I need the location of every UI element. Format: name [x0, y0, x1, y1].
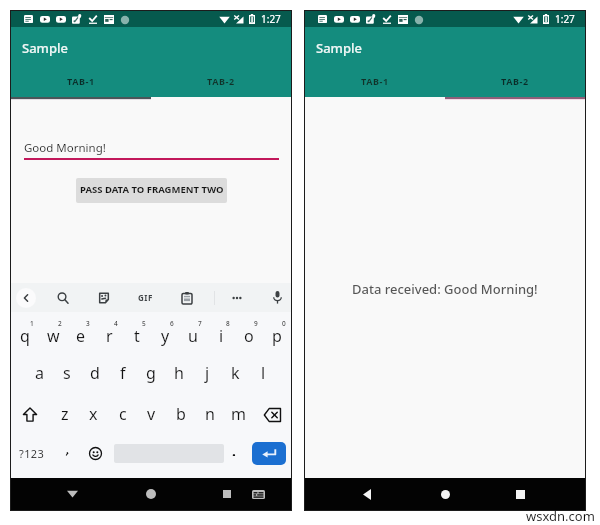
- button[interactable]: x: [79, 394, 108, 435]
- button[interactable]: TAB-1: [11, 66, 151, 97]
- staticText: n: [205, 403, 215, 425]
- button[interactable]: More options: [229, 290, 245, 306]
- staticText: Data received: Good Morning!: [352, 280, 538, 298]
- button[interactable]: Collapse toolbar: [16, 288, 36, 308]
- staticText: i: [219, 325, 224, 347]
- button[interactable]: v: [137, 394, 166, 435]
- button[interactable]: f: [109, 353, 137, 394]
- button[interactable]: d: [81, 353, 109, 394]
- staticText: 7: [198, 319, 202, 328]
- button[interactable]: Shift: [11, 394, 49, 435]
- staticText: m: [231, 403, 246, 425]
- staticText: 6: [170, 319, 174, 328]
- button[interactable]: Hide keyboard: [67, 490, 78, 498]
- button[interactable]: Clipboard: [182, 292, 192, 304]
- staticText: o: [244, 325, 254, 347]
- button[interactable]: 7: [179, 312, 207, 353]
- staticText: TAB-2: [501, 75, 529, 87]
- button[interactable]: 6: [151, 312, 179, 353]
- button[interactable]: ?123: [19, 446, 45, 461]
- staticText: wsxdn.com: [526, 507, 595, 525]
- staticText: e: [76, 325, 86, 347]
- other: Shift: [23, 407, 37, 422]
- button[interactable]: Back: [363, 489, 371, 500]
- button[interactable]: 9: [235, 312, 263, 353]
- button[interactable]: k: [221, 353, 249, 394]
- button[interactable]: 8: [207, 312, 235, 353]
- staticText: b: [176, 403, 186, 425]
- staticText: 1:27: [555, 12, 575, 26]
- button[interactable]: j: [193, 353, 221, 394]
- button[interactable]: m: [224, 394, 253, 435]
- staticText: k: [231, 362, 240, 384]
- button[interactable]: 4: [95, 312, 123, 353]
- staticText: l: [261, 362, 266, 384]
- staticText: c: [119, 403, 127, 425]
- staticText: a: [35, 362, 44, 384]
- button[interactable]: PASS DATA TO FRAGMENT TWO: [76, 178, 227, 203]
- staticText: 0: [282, 319, 286, 328]
- staticText: Sample: [22, 39, 68, 57]
- staticText: z: [61, 403, 69, 425]
- button[interactable]: a: [25, 353, 53, 394]
- button[interactable]: z: [51, 394, 79, 435]
- staticText: TAB-1: [67, 75, 95, 87]
- staticText: x: [89, 403, 98, 425]
- button[interactable]: Search: [55, 290, 71, 306]
- staticText: Sample: [316, 39, 362, 57]
- button[interactable]: h: [165, 353, 193, 394]
- staticText: j: [205, 362, 210, 384]
- staticText: p: [272, 325, 282, 347]
- button[interactable]: Voice input: [273, 291, 282, 304]
- staticText: u: [188, 325, 198, 347]
- staticText: Good Morning!: [24, 140, 106, 156]
- button[interactable]: Enter: [252, 442, 286, 465]
- button[interactable]: 0: [263, 312, 291, 353]
- button[interactable]: GIF: [138, 292, 153, 303]
- button[interactable]: 3: [67, 312, 95, 353]
- button[interactable]: 2: [39, 312, 67, 353]
- staticText: TAB-1: [361, 75, 389, 87]
- button[interactable]: b: [166, 394, 195, 435]
- staticText: t: [134, 325, 140, 347]
- button[interactable]: Stickers: [96, 290, 112, 306]
- button[interactable]: g: [137, 353, 165, 394]
- staticText: 1: [30, 319, 34, 328]
- staticText: h: [174, 362, 184, 384]
- staticText: 4: [114, 319, 118, 328]
- button[interactable]: TAB-2: [151, 66, 291, 97]
- button[interactable]: s: [53, 353, 81, 394]
- staticText: g: [146, 362, 156, 384]
- staticText: 9: [254, 319, 258, 328]
- button[interactable]: [59, 445, 75, 461]
- button[interactable]: Home: [146, 489, 156, 499]
- staticText: f: [120, 362, 126, 384]
- staticText: 8: [226, 319, 230, 328]
- button[interactable]: 1: [11, 312, 39, 353]
- staticText: 5: [142, 319, 146, 328]
- button[interactable]: [226, 445, 242, 461]
- staticText: 2: [58, 319, 62, 328]
- staticText: q: [20, 325, 30, 347]
- button[interactable]: c: [108, 394, 137, 435]
- button[interactable]: Backspace: [253, 394, 291, 435]
- staticText: r: [106, 325, 113, 347]
- button[interactable]: 5: [123, 312, 151, 353]
- button[interactable]: Emoji: [87, 445, 103, 461]
- staticText: PASS DATA TO FRAGMENT TWO: [80, 183, 224, 196]
- button[interactable]: n: [195, 394, 224, 435]
- staticText: y: [161, 325, 170, 347]
- staticText: ?123: [19, 446, 45, 461]
- button[interactable]: Switch keyboard: [252, 490, 265, 499]
- button[interactable]: TAB-2: [445, 66, 585, 97]
- staticText: TAB-2: [207, 75, 235, 87]
- staticText: 3: [86, 319, 90, 328]
- button[interactable]: TAB-1: [305, 66, 445, 97]
- button[interactable]: l: [249, 353, 277, 394]
- button[interactable]: Home: [441, 490, 450, 499]
- staticText: 1:27: [261, 12, 281, 26]
- other: Backspace: [264, 408, 281, 422]
